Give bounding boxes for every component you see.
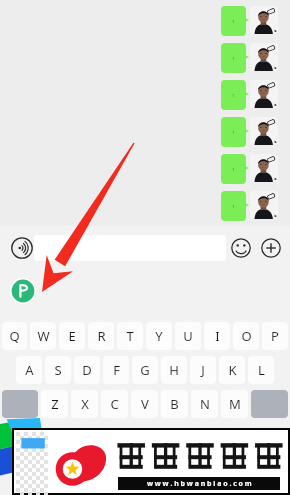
button[interactable] xyxy=(250,191,278,219)
button[interactable]: M xyxy=(221,390,248,418)
button[interactable]: 1 xyxy=(221,80,246,110)
staticText: 1 xyxy=(232,56,235,61)
staticText: 1 xyxy=(232,19,235,24)
button[interactable]: E xyxy=(59,322,85,350)
button[interactable]: B xyxy=(161,390,188,418)
button[interactable]: K xyxy=(219,356,245,384)
staticText: J xyxy=(201,361,205,379)
button[interactable]: 1 xyxy=(221,43,246,73)
button[interactable]: L xyxy=(248,356,274,384)
button[interactable]: R xyxy=(88,322,114,350)
staticText: Q xyxy=(9,327,20,345)
button[interactable] xyxy=(34,235,226,261)
button[interactable]: C xyxy=(101,390,128,418)
staticText: D xyxy=(82,361,92,379)
staticText: T xyxy=(126,327,134,345)
button[interactable]: More xyxy=(258,235,284,261)
staticText: B xyxy=(170,395,179,413)
staticText: w w w . h b w a n b i a o . c o m xyxy=(147,479,252,489)
button[interactable] xyxy=(250,43,278,71)
staticText: F xyxy=(113,361,120,379)
button[interactable]: Shift xyxy=(2,390,38,418)
staticText: I xyxy=(215,327,220,345)
button[interactable]: I xyxy=(204,322,230,350)
button[interactable]: O xyxy=(233,322,259,350)
button[interactable]: X xyxy=(71,390,98,418)
staticText: 1 xyxy=(232,130,235,135)
staticText: L xyxy=(258,361,265,379)
staticText: 1 xyxy=(232,93,235,98)
button[interactable]: S xyxy=(45,356,71,384)
button[interactable]: Z xyxy=(41,390,68,418)
staticText: X xyxy=(81,395,89,413)
staticText: C xyxy=(110,395,119,413)
button[interactable]: Voice input xyxy=(8,234,36,262)
button[interactable]: Q xyxy=(2,322,27,350)
staticText: R xyxy=(97,327,106,345)
button[interactable] xyxy=(250,154,278,182)
button[interactable] xyxy=(250,80,278,108)
staticText: P xyxy=(271,327,279,345)
staticText: M xyxy=(229,395,241,413)
staticText: W xyxy=(37,327,50,345)
staticText: A xyxy=(25,361,34,379)
button[interactable]: 1 xyxy=(221,154,246,184)
button[interactable]: A xyxy=(16,356,42,384)
staticText: N xyxy=(200,395,210,413)
button[interactable]: J xyxy=(190,356,216,384)
button[interactable]: N xyxy=(191,390,218,418)
staticText: H xyxy=(169,361,179,379)
button[interactable]: W xyxy=(30,322,56,350)
staticText: 1 xyxy=(232,167,235,172)
button[interactable] xyxy=(250,6,278,34)
button[interactable]: D xyxy=(74,356,100,384)
staticText: G xyxy=(140,361,150,379)
button[interactable]: U xyxy=(175,322,201,350)
button[interactable]: T xyxy=(117,322,143,350)
staticText: Z xyxy=(51,395,59,413)
button[interactable]: 1 xyxy=(221,117,246,147)
staticText: U xyxy=(183,327,193,345)
staticText: E xyxy=(68,327,76,345)
staticText: K xyxy=(228,361,237,379)
button[interactable]: 1 xyxy=(221,6,246,36)
button[interactable]: V xyxy=(131,390,158,418)
staticText: S xyxy=(54,361,62,379)
button[interactable]: App shortcut xyxy=(10,278,36,304)
button[interactable]: Y xyxy=(146,322,172,350)
staticText: O xyxy=(241,327,252,345)
button[interactable]: Backspace xyxy=(251,390,288,418)
button[interactable]: Emoji xyxy=(228,235,254,261)
button[interactable] xyxy=(250,117,278,145)
button[interactable]: F xyxy=(103,356,129,384)
staticText: V xyxy=(141,395,149,413)
staticText: 1 xyxy=(232,204,235,209)
button[interactable]: 1 xyxy=(221,191,246,221)
button[interactable]: G xyxy=(132,356,158,384)
button[interactable]: H xyxy=(161,356,187,384)
button[interactable]: P xyxy=(262,322,288,350)
staticText: Y xyxy=(155,327,163,345)
